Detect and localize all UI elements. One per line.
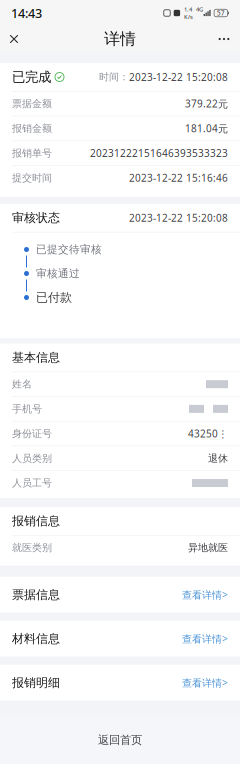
staticText: 181.04元: [185, 122, 228, 135]
staticText: 基本信息: [12, 350, 60, 365]
staticText: 报销信息: [12, 513, 60, 528]
staticText: 已付款: [36, 290, 72, 305]
staticText: 退休: [208, 452, 228, 465]
staticText: 报销金额: [12, 122, 52, 135]
staticText: 已提交待审核: [36, 243, 102, 256]
staticText: 379.22元: [185, 97, 228, 110]
staticText: 人员工号: [12, 477, 52, 489]
staticText: 2023-12-22 15:16:46: [129, 171, 228, 185]
staticText: 提交时间: [12, 171, 52, 184]
staticText: 43250⋮: [188, 427, 228, 440]
button[interactable]: 材料信息: [0, 621, 240, 657]
button[interactable]: Close: [2, 26, 26, 52]
button[interactable]: 返回首页: [0, 716, 240, 764]
staticText: 材料信息: [12, 631, 60, 646]
staticText: 查看详情>: [182, 632, 228, 645]
staticText: 票据信息: [12, 587, 60, 602]
staticText: 手机号: [12, 403, 42, 415]
staticText: 2023-12-22 15:20:08: [129, 70, 228, 84]
staticText: 4G: [196, 5, 203, 13]
staticText: 人员类别: [12, 452, 52, 465]
staticText: 查看详情>: [182, 676, 228, 689]
staticText: 查看详情>: [182, 588, 228, 601]
staticText: 姓名: [12, 378, 32, 390]
staticText: 报销明细: [12, 675, 60, 690]
staticText: 时间：: [99, 71, 129, 83]
staticText: 报销单号: [12, 147, 52, 159]
button[interactable]: More options: [212, 26, 236, 52]
staticText: 身份证号: [12, 427, 52, 440]
staticText: 审核状态: [12, 210, 60, 225]
staticText: 异地就医: [188, 541, 228, 554]
staticText: 1.4: [184, 5, 192, 13]
button[interactable]: 报销明细: [0, 665, 240, 701]
staticText: 返回首页: [98, 733, 142, 747]
staticText: 票据金额: [12, 97, 52, 110]
staticText: 就医类别: [12, 541, 52, 554]
button[interactable]: 票据信息: [0, 577, 240, 613]
staticText: 57: [217, 8, 225, 18]
staticText: 14:43: [11, 4, 42, 22]
staticText: 审核通过: [36, 267, 80, 280]
staticText: 详情: [104, 29, 136, 49]
staticText: 2023-12-22 15:20:08: [129, 211, 228, 225]
staticText: 已完成: [12, 69, 51, 85]
staticText: 20231222151646393533323: [90, 146, 228, 160]
staticText: K/s: [184, 13, 193, 21]
